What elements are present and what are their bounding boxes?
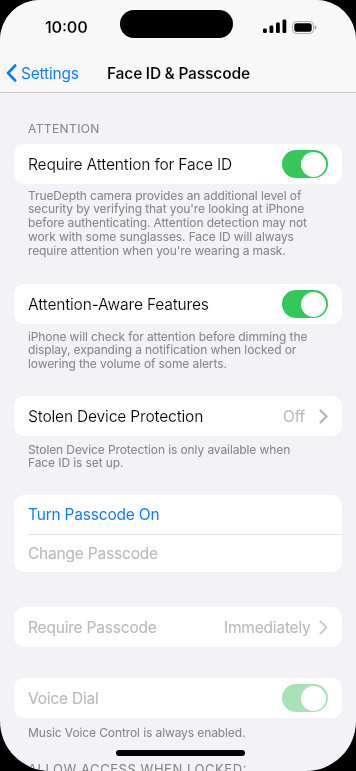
staticText: Settings — [21, 64, 79, 83]
staticText: Voice Dial — [28, 689, 99, 708]
staticText: Music Voice Control is always enabled. — [28, 725, 246, 740]
button[interactable] — [282, 150, 328, 178]
button[interactable]: Voice Dial — [14, 678, 342, 718]
button[interactable] — [282, 290, 328, 318]
staticText: Require Attention for Face ID — [28, 155, 233, 174]
staticText: TrueDepth camera provides an additional … — [28, 188, 307, 258]
staticText: Change Passcode — [28, 544, 158, 563]
staticText: ALLOW ACCESS WHEN LOCKED: — [28, 761, 247, 771]
staticText: Require Passcode — [28, 618, 157, 637]
staticText: iPhone will check for attention before d… — [28, 329, 308, 371]
staticText: Turn Passcode On — [28, 505, 160, 524]
button[interactable]: Change Passcode — [14, 534, 342, 572]
staticText: Off — [283, 407, 306, 426]
staticText: Attention-Aware Features — [28, 295, 209, 314]
button[interactable]: Stolen Device Protection — [14, 396, 342, 436]
button[interactable]: Settings — [6, 51, 79, 95]
button[interactable]: Attention-Aware Features — [14, 284, 342, 324]
button[interactable]: Require Attention for Face ID — [14, 144, 342, 184]
staticText: Immediately — [224, 618, 311, 637]
button[interactable]: Require Passcode — [14, 607, 342, 647]
staticText: Stolen Device Protection is only availab… — [28, 442, 291, 470]
button[interactable] — [282, 684, 328, 712]
staticText: Stolen Device Protection — [28, 407, 204, 426]
staticText: 10:00 — [45, 17, 88, 36]
button[interactable]: Turn Passcode On — [14, 495, 342, 534]
staticText: Face ID & Passcode — [107, 64, 250, 83]
staticText: ATTENTION — [28, 121, 100, 136]
